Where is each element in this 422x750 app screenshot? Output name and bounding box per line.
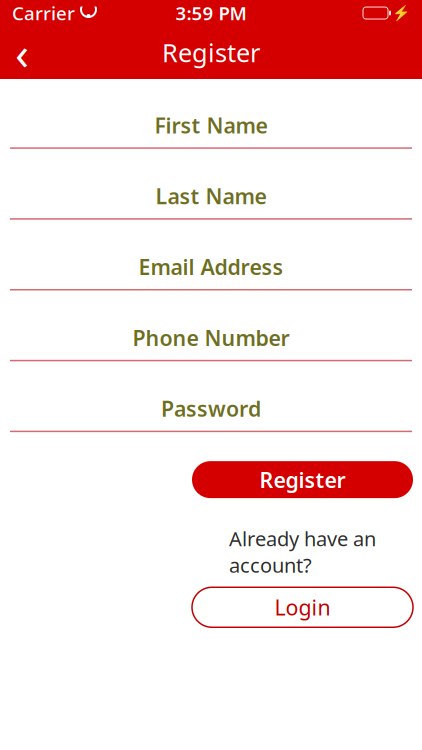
staticText: Email Address <box>138 253 283 281</box>
staticText: ‹ <box>15 22 29 83</box>
staticText: First Name <box>154 111 267 139</box>
staticText: Login <box>274 593 330 621</box>
staticText: Already have an account? <box>229 525 376 578</box>
staticText: Register <box>259 465 345 494</box>
button[interactable]: Back <box>0 26 44 79</box>
staticText: Carrier <box>12 1 75 25</box>
staticText: Last Name <box>155 182 266 210</box>
staticText: Password <box>161 394 261 423</box>
staticText: Phone Number <box>132 323 289 352</box>
staticText: ⚡ <box>392 5 410 21</box>
button[interactable]: Login <box>192 587 413 627</box>
staticText: Register <box>162 36 260 69</box>
staticText: 3:59 PM <box>175 1 246 25</box>
button[interactable]: Register <box>192 461 413 498</box>
